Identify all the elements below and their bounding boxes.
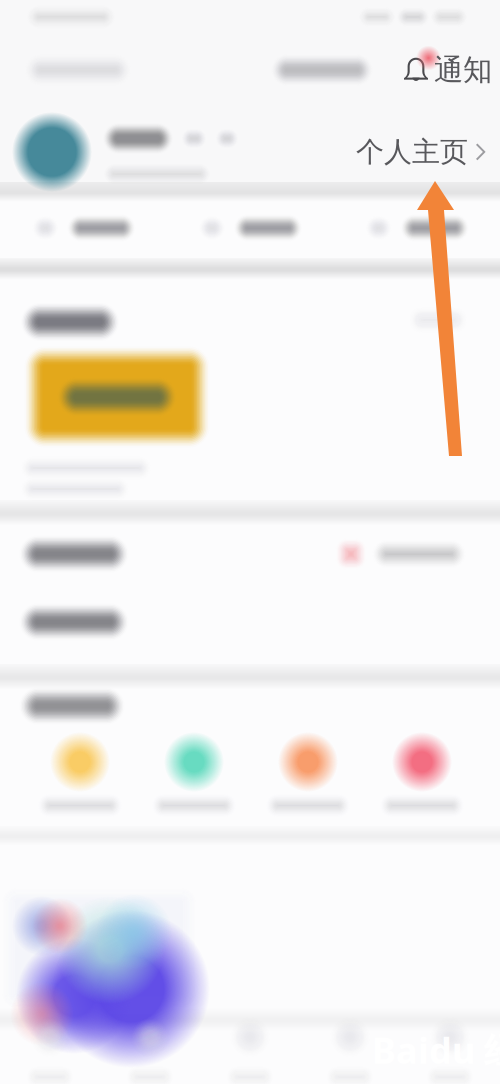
button[interactable] <box>23 732 137 819</box>
button[interactable]: 立即参与 <box>0 890 104 932</box>
staticText: 个人主页 <box>356 135 468 169</box>
button[interactable]: 通知 <box>400 52 492 88</box>
button[interactable] <box>12 112 240 192</box>
button[interactable]: 活动图片 <box>0 890 210 1020</box>
staticText: Baidu 经验 <box>372 1026 500 1074</box>
button[interactable] <box>0 520 500 588</box>
button[interactable] <box>23 345 211 449</box>
button[interactable] <box>365 732 479 819</box>
button[interactable] <box>333 192 500 264</box>
button[interactable]: 消息 <box>270 53 374 87</box>
button[interactable]: 标签 <box>400 1022 500 1084</box>
button[interactable]: 标签 <box>300 1022 400 1084</box>
button[interactable] <box>251 732 365 819</box>
button[interactable]: 标签 <box>100 1022 200 1084</box>
button[interactable] <box>0 588 500 656</box>
button[interactable] <box>0 192 167 264</box>
staticText: 通知 <box>434 52 492 88</box>
button[interactable]: 标签 <box>200 1022 300 1084</box>
button[interactable] <box>167 192 333 264</box>
button[interactable] <box>137 732 251 819</box>
button[interactable]: 标签 <box>0 1022 100 1084</box>
button[interactable]: 个人主页 <box>356 135 486 169</box>
